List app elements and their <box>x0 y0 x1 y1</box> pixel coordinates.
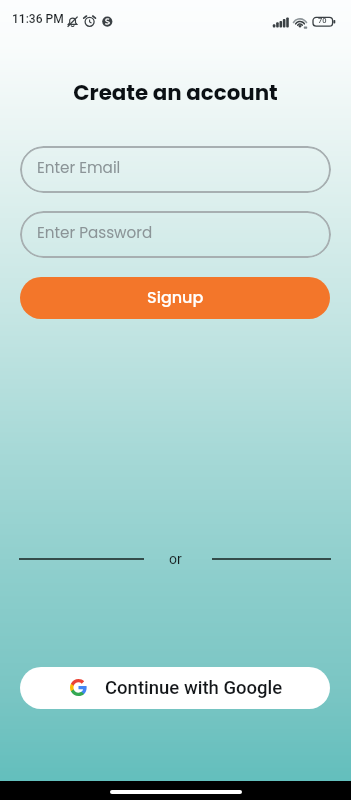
staticText: Create an account <box>0 78 351 108</box>
button[interactable]: Enter Email <box>20 146 331 193</box>
staticText: Enter Password <box>37 222 153 243</box>
button[interactable]: Enter Password <box>20 211 331 258</box>
staticText: or <box>169 551 182 567</box>
staticText: Continue with Google <box>105 677 283 699</box>
staticText: 70 <box>318 16 327 25</box>
button[interactable]: Signup <box>20 277 330 319</box>
staticText: Enter Email <box>37 157 121 178</box>
staticText: 11:36 PM <box>12 12 64 26</box>
button[interactable]: Continue with Google <box>20 667 330 709</box>
staticText: Signup <box>147 286 204 308</box>
